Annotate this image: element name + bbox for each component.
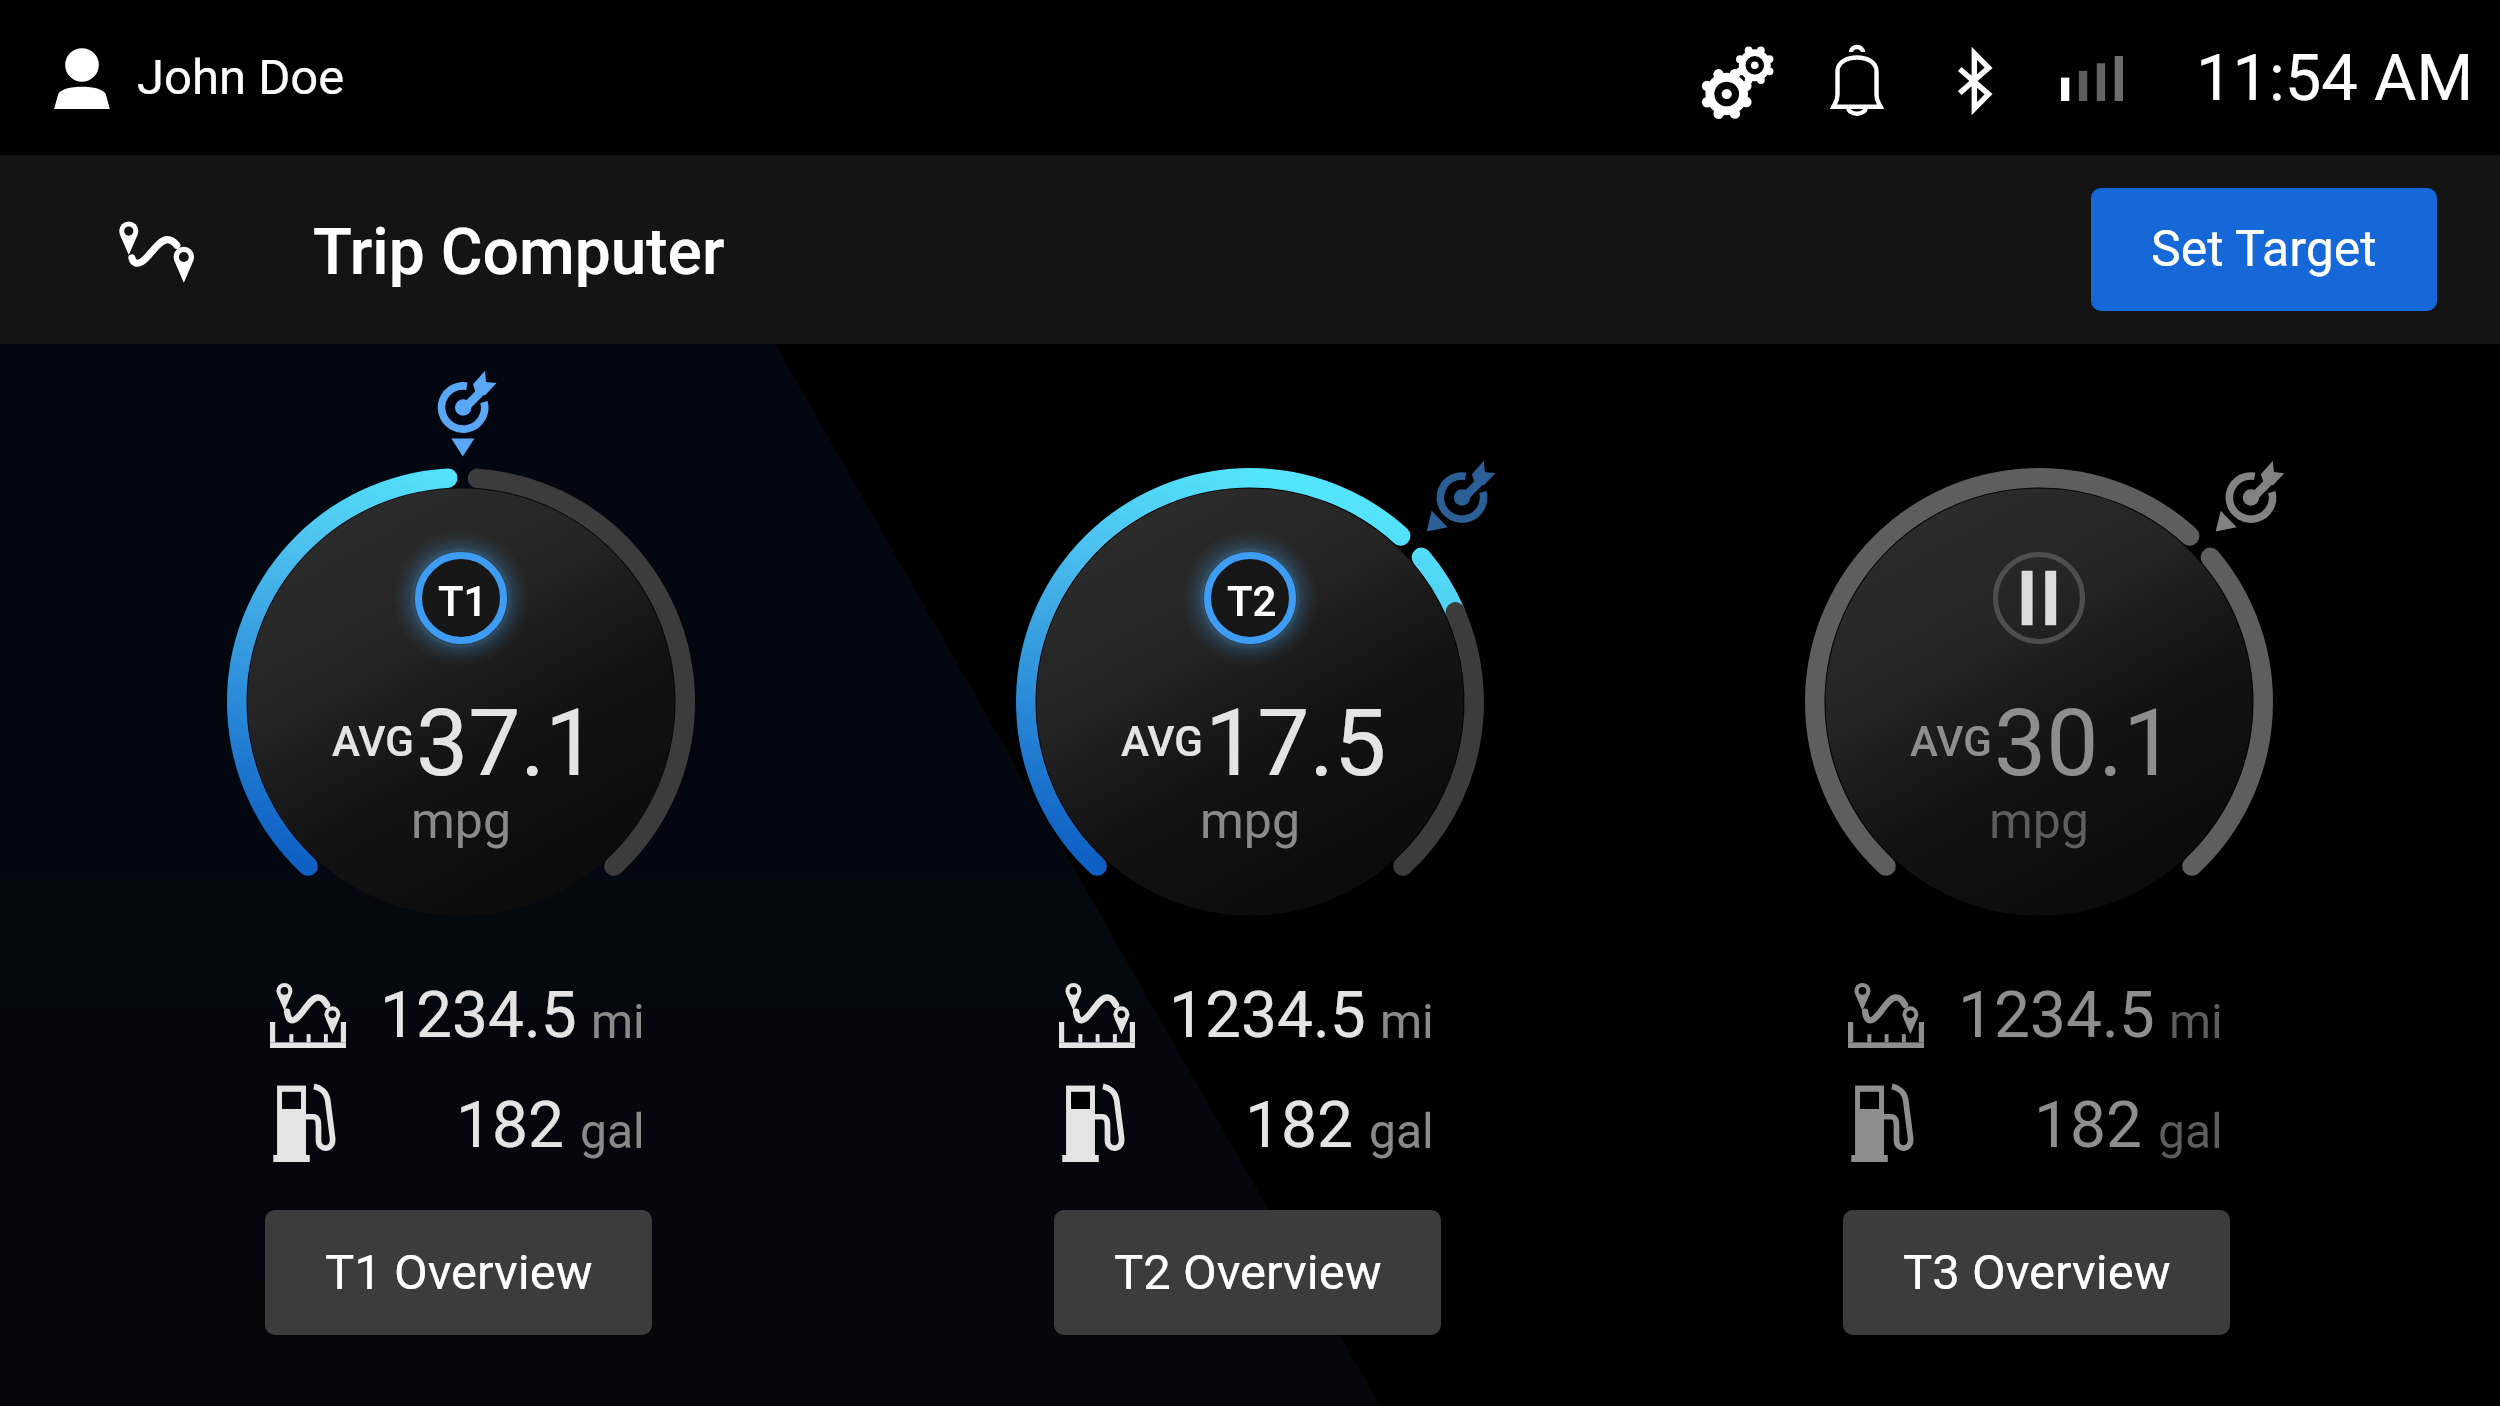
staticText: mi bbox=[2169, 993, 2223, 1049]
staticText: AVG bbox=[332, 717, 414, 766]
staticText: T2 bbox=[1227, 577, 1277, 626]
button[interactable]: T1 Overview bbox=[265, 1210, 652, 1335]
button[interactable]: Bluetooth bbox=[1958, 51, 1992, 111]
staticText: 1234.5 bbox=[1169, 978, 1366, 1053]
button[interactable]: T3 Overview bbox=[1843, 1210, 2230, 1335]
staticText: mi bbox=[591, 993, 645, 1049]
staticText: mpg bbox=[1200, 792, 1300, 851]
staticText: 17.5 bbox=[1205, 689, 1387, 798]
staticText: T3 Overview bbox=[1903, 1244, 2171, 1301]
button[interactable]: Set Target bbox=[2091, 188, 2437, 311]
staticText: mi bbox=[1380, 993, 1434, 1049]
staticText: gal bbox=[1369, 1103, 1434, 1159]
staticText: T1 Overview bbox=[325, 1244, 593, 1301]
staticText: mpg bbox=[1989, 792, 2089, 851]
staticText: 1234.5 bbox=[380, 978, 577, 1053]
button[interactable]: Notifications bbox=[1831, 43, 1883, 117]
button[interactable]: Settings bbox=[1704, 45, 1775, 116]
staticText: Trip Computer bbox=[313, 215, 725, 290]
staticText: 182 bbox=[456, 1088, 564, 1163]
staticText: 30.1 bbox=[1994, 689, 2176, 798]
staticText: 37.1 bbox=[416, 689, 598, 798]
staticText: 182 bbox=[2034, 1088, 2142, 1163]
button[interactable]: T2 Overview bbox=[1054, 1210, 1441, 1335]
staticText: 182 bbox=[1245, 1088, 1353, 1163]
staticText: AVG bbox=[1121, 717, 1203, 766]
staticText: mpg bbox=[411, 792, 511, 851]
staticText: T1 bbox=[438, 577, 488, 626]
staticText: 11:54 AM bbox=[2196, 40, 2474, 116]
staticText: gal bbox=[580, 1103, 645, 1159]
staticText: T2 Overview bbox=[1114, 1244, 1382, 1301]
staticText: Set Target bbox=[2151, 220, 2377, 279]
staticText: AVG bbox=[1910, 717, 1992, 766]
staticText: 1234.5 bbox=[1958, 978, 2155, 1053]
staticText: gal bbox=[2158, 1103, 2223, 1159]
staticText: John Doe bbox=[137, 49, 345, 106]
